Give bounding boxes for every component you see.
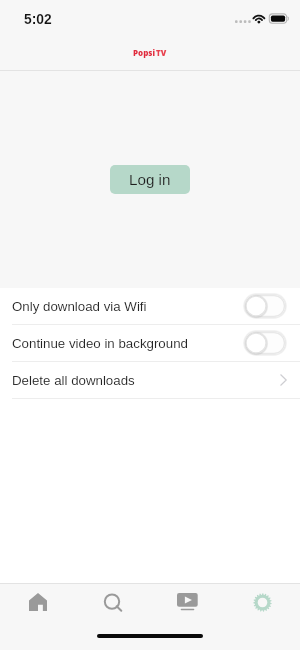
button[interactable]: Videos — [150, 584, 225, 620]
staticText: Popsi — [133, 47, 156, 58]
staticText: 5:02 — [24, 12, 52, 27]
button[interactable]: Log in — [110, 165, 190, 194]
staticText: Only download via Wifi — [12, 299, 147, 314]
button[interactable]: Continue video in background — [0, 325, 300, 361]
button[interactable]: Search — [75, 584, 150, 620]
button[interactable]: Home — [0, 584, 75, 620]
button[interactable]: Only download via Wifi — [0, 288, 300, 324]
button[interactable]: Delete all downloads — [0, 362, 300, 398]
button[interactable]: Settings — [225, 584, 300, 620]
staticText: Continue video in background — [12, 336, 188, 351]
staticText: Log in — [129, 171, 171, 188]
staticText: TV — [156, 47, 167, 58]
staticText: Delete all downloads — [12, 373, 135, 388]
